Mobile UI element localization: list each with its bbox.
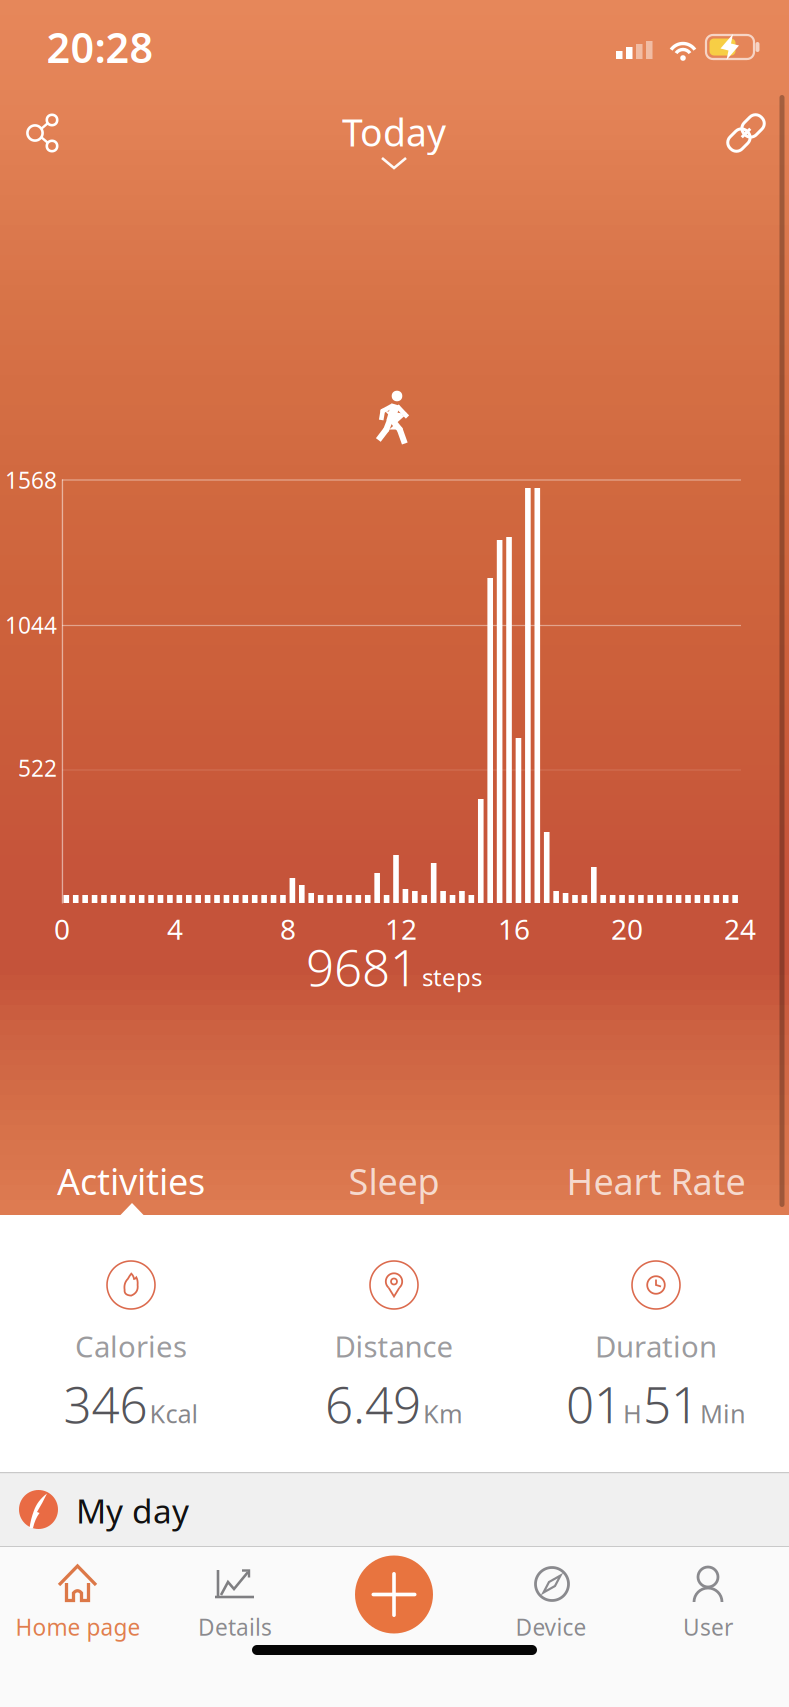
staticText: Kcal xyxy=(149,1396,198,1430)
staticText: My day xyxy=(76,1488,189,1533)
button[interactable]: User xyxy=(633,1547,783,1657)
staticText: 4 xyxy=(167,910,183,948)
button[interactable] xyxy=(721,108,771,158)
staticText: Duration xyxy=(595,1326,717,1365)
staticText: Distance xyxy=(334,1326,453,1365)
staticText: 0 xyxy=(54,910,70,948)
button[interactable]: Home page xyxy=(3,1547,153,1657)
staticText: 51 xyxy=(643,1371,699,1437)
button[interactable]: Today xyxy=(344,110,444,180)
staticText: User xyxy=(683,1612,733,1642)
staticText: Km xyxy=(423,1396,463,1430)
staticText: Heart Rate xyxy=(566,1157,745,1205)
staticText: 20:28 xyxy=(46,20,153,74)
staticText: 8 xyxy=(280,910,296,948)
staticText: Activities xyxy=(57,1157,205,1205)
staticText: Details xyxy=(198,1612,272,1642)
button[interactable] xyxy=(9,101,73,165)
staticText: 24 xyxy=(724,910,756,948)
staticText: Calories xyxy=(75,1326,187,1365)
staticText: 346 xyxy=(63,1371,147,1437)
staticText: 20 xyxy=(611,910,643,948)
staticText: Today xyxy=(342,107,446,157)
staticText: 1044 xyxy=(5,610,57,640)
button[interactable] xyxy=(355,1555,433,1633)
staticText: 16 xyxy=(498,910,530,948)
staticText: 01 xyxy=(566,1371,622,1437)
staticText: 12 xyxy=(385,910,417,948)
staticText: H xyxy=(623,1396,642,1430)
button[interactable]: Activities xyxy=(31,1151,231,1211)
staticText: Min xyxy=(700,1396,746,1430)
button[interactable]: Sleep xyxy=(304,1151,484,1211)
button[interactable]: Device xyxy=(476,1547,626,1657)
button[interactable]: Details xyxy=(160,1547,310,1657)
staticText: 1568 xyxy=(5,465,57,495)
staticText: 522 xyxy=(18,753,57,783)
staticText: Device xyxy=(515,1612,586,1642)
staticText: 6.49 xyxy=(325,1371,421,1437)
staticText: steps xyxy=(422,961,482,993)
staticText: 9681 xyxy=(306,934,418,1000)
button[interactable]: My day xyxy=(0,1472,789,1547)
staticText: Home page xyxy=(15,1612,140,1642)
staticText: Sleep xyxy=(348,1157,439,1205)
button[interactable]: Heart Rate xyxy=(546,1151,766,1211)
